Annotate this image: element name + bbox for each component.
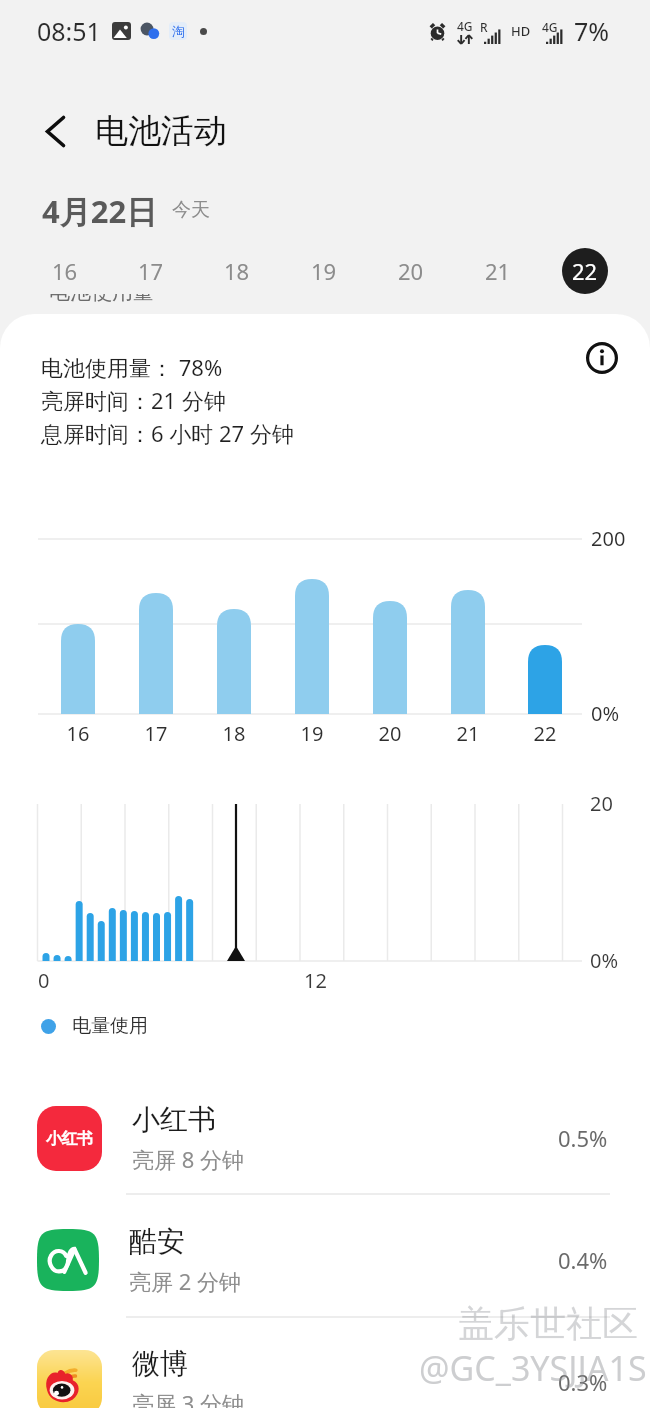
staticText: 0 <box>38 967 50 994</box>
staticText: 0.4% <box>558 1245 608 1275</box>
staticText: 淘 <box>172 23 185 39</box>
button[interactable]: 小红书 <box>0 1077 650 1199</box>
staticText: 息屏时间：6 小时 27 分钟 <box>41 418 294 448</box>
staticText: 盖乐世社区 <box>458 1301 638 1346</box>
staticText: 亮屏时间：21 分钟 <box>41 385 226 415</box>
staticText: HD <box>511 22 531 40</box>
button[interactable]: 21 <box>454 244 541 298</box>
staticText: 21 <box>455 720 481 747</box>
staticText: 0% <box>590 947 619 974</box>
button[interactable]: Info <box>582 338 622 378</box>
staticText: 19 <box>299 720 325 747</box>
staticText: 21 <box>485 256 511 286</box>
staticText: 4月22日 <box>42 190 158 230</box>
staticText: 0.3% <box>558 1367 608 1397</box>
staticText: 酷安 <box>129 1224 185 1259</box>
button[interactable]: 16 <box>22 244 108 298</box>
button[interactable]: 17 <box>108 244 194 298</box>
staticText: 20 <box>377 720 403 747</box>
button[interactable]: Back <box>30 106 80 156</box>
staticText: 今天 <box>172 198 210 222</box>
staticText: 电量使用 <box>72 1014 148 1038</box>
button[interactable]: 电量使用 <box>41 1014 148 1038</box>
button[interactable]: 20 <box>367 244 454 298</box>
staticText: 20 <box>590 790 613 817</box>
staticText: @GC_3YSJJA1S <box>419 1345 647 1391</box>
staticText: 200 <box>591 525 626 552</box>
staticText: 亮屏 2 分钟 <box>129 1266 242 1296</box>
staticText: 小红书 <box>132 1102 216 1137</box>
staticText: 电池活动 <box>95 110 227 152</box>
staticText: 小红书 <box>46 1129 93 1149</box>
staticText: 7% <box>574 14 610 48</box>
staticText: 微博 <box>132 1346 188 1381</box>
staticText: 亮屏 3 分钟 <box>132 1388 245 1408</box>
staticText: 电池使用量 <box>49 279 154 305</box>
staticText: 20 <box>398 256 424 286</box>
button[interactable]: 19 <box>280 244 367 298</box>
staticText: 17 <box>143 720 169 747</box>
staticText: 18 <box>221 720 247 747</box>
button[interactable]: 微博 <box>0 1321 650 1408</box>
staticText: R <box>480 19 488 35</box>
staticText: 12 <box>304 967 327 994</box>
staticText: 亮屏 8 分钟 <box>132 1144 245 1174</box>
staticText: 16 <box>52 256 78 286</box>
staticText: 0% <box>591 700 620 727</box>
staticText: 17 <box>138 256 164 286</box>
staticText: 22 <box>532 720 558 747</box>
button[interactable]: 18 <box>194 244 280 298</box>
button[interactable]: 22 <box>541 244 628 298</box>
staticText: 4G <box>457 18 473 34</box>
staticText: 08:51 <box>37 14 101 48</box>
staticText: 4G <box>542 19 558 35</box>
staticText: 18 <box>224 256 250 286</box>
button[interactable]: 酷安 <box>0 1199 650 1321</box>
staticText: 电池使用量： 78% <box>41 352 223 382</box>
staticText: 0.5% <box>558 1123 608 1153</box>
staticText: 22 <box>572 256 598 286</box>
staticText: 16 <box>65 720 91 747</box>
staticText: 19 <box>311 256 337 286</box>
